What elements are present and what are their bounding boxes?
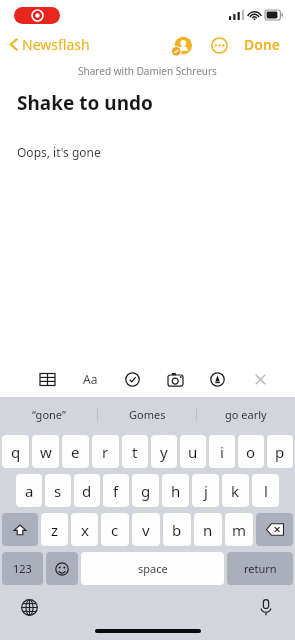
button[interactable]: Aa bbox=[77, 366, 103, 392]
staticText: f bbox=[113, 481, 119, 501]
staticText: Aa bbox=[83, 371, 98, 387]
button[interactable]: v bbox=[132, 513, 160, 546]
staticText: n bbox=[203, 520, 213, 540]
button[interactable]: Camera bbox=[162, 366, 188, 392]
button[interactable]: x bbox=[71, 513, 98, 546]
button[interactable]: s bbox=[45, 474, 71, 507]
button[interactable]: n bbox=[194, 513, 222, 546]
button[interactable]: Close keyboard bbox=[247, 366, 273, 392]
staticText: p bbox=[275, 442, 285, 462]
button[interactable]: go early bbox=[197, 397, 295, 431]
button[interactable]: Dictation bbox=[253, 594, 279, 620]
staticText: space bbox=[138, 561, 168, 576]
staticText: j bbox=[204, 481, 208, 501]
staticText: o bbox=[246, 442, 256, 462]
staticText: Shake to undo bbox=[17, 90, 153, 116]
staticText: i bbox=[220, 442, 224, 462]
button[interactable]: Shift bbox=[2, 513, 38, 546]
button[interactable]: Done bbox=[240, 31, 285, 58]
button[interactable]: b bbox=[163, 513, 191, 546]
button[interactable]: f bbox=[103, 474, 129, 507]
button[interactable]: j bbox=[192, 474, 219, 507]
staticText: z bbox=[51, 520, 59, 540]
button[interactable]: space bbox=[81, 552, 224, 585]
button[interactable]: return bbox=[227, 552, 293, 585]
button[interactable]: “gone” bbox=[0, 397, 97, 431]
button[interactable]: q bbox=[2, 435, 29, 468]
button[interactable]: t bbox=[122, 435, 148, 468]
button[interactable]: g bbox=[132, 474, 159, 507]
button[interactable]: p bbox=[267, 435, 293, 468]
staticText: r bbox=[102, 442, 109, 462]
staticText: c bbox=[111, 520, 119, 540]
button[interactable]: r bbox=[92, 435, 119, 468]
staticText: m bbox=[232, 520, 247, 540]
button[interactable]: Recording indicator bbox=[14, 7, 60, 24]
button[interactable]: k bbox=[222, 474, 249, 507]
staticText: y bbox=[160, 442, 168, 462]
button[interactable]: Gomes bbox=[98, 397, 196, 431]
button[interactable]: c bbox=[101, 513, 129, 546]
button[interactable]: i bbox=[209, 435, 235, 468]
staticText: g bbox=[141, 481, 151, 501]
staticText: “gone” bbox=[32, 407, 66, 422]
staticText: 123 bbox=[13, 561, 32, 576]
button[interactable]: Backspace bbox=[256, 513, 293, 546]
staticText: s bbox=[54, 481, 62, 501]
staticText: d bbox=[82, 481, 92, 501]
staticText: q bbox=[11, 442, 21, 462]
button[interactable]: 123 bbox=[2, 552, 43, 585]
button[interactable]: l bbox=[252, 474, 279, 507]
staticText: return bbox=[244, 561, 277, 576]
button[interactable]: a bbox=[16, 474, 42, 507]
button[interactable]: u bbox=[180, 435, 206, 468]
staticText: a bbox=[25, 481, 34, 501]
staticText: w bbox=[40, 442, 52, 462]
staticText: go early bbox=[225, 407, 267, 422]
staticText: Gomes bbox=[129, 407, 166, 422]
button[interactable]: Newsflash bbox=[8, 32, 92, 57]
button[interactable]: w bbox=[32, 435, 59, 468]
staticText: Newsflash bbox=[22, 35, 90, 54]
staticText: b bbox=[172, 520, 182, 540]
staticText: Shared with Damien Schreurs bbox=[78, 64, 217, 78]
button[interactable]: o bbox=[238, 435, 264, 468]
button[interactable]: m bbox=[225, 513, 253, 546]
staticText: Done bbox=[244, 35, 281, 54]
staticText: v bbox=[142, 520, 150, 540]
button[interactable]: h bbox=[162, 474, 189, 507]
staticText: t bbox=[132, 442, 138, 462]
button[interactable]: Markup bbox=[204, 366, 230, 392]
button[interactable]: Emoji bbox=[46, 552, 78, 585]
staticText: Oops, it's gone bbox=[17, 144, 101, 160]
button[interactable]: Share participants bbox=[169, 32, 195, 58]
button[interactable]: z bbox=[41, 513, 68, 546]
staticText: l bbox=[264, 481, 268, 501]
button[interactable]: Change keyboard bbox=[16, 594, 42, 620]
button[interactable]: e bbox=[62, 435, 89, 468]
button[interactable]: d bbox=[74, 474, 100, 507]
staticText: h bbox=[171, 481, 181, 501]
staticText: u bbox=[188, 442, 198, 462]
button[interactable]: y bbox=[151, 435, 177, 468]
staticText: x bbox=[81, 520, 89, 540]
button[interactable]: More options bbox=[206, 32, 232, 58]
staticText: k bbox=[231, 481, 240, 501]
staticText: e bbox=[71, 442, 80, 462]
button[interactable]: Checklist bbox=[119, 366, 145, 392]
button[interactable]: Table bbox=[34, 366, 60, 392]
